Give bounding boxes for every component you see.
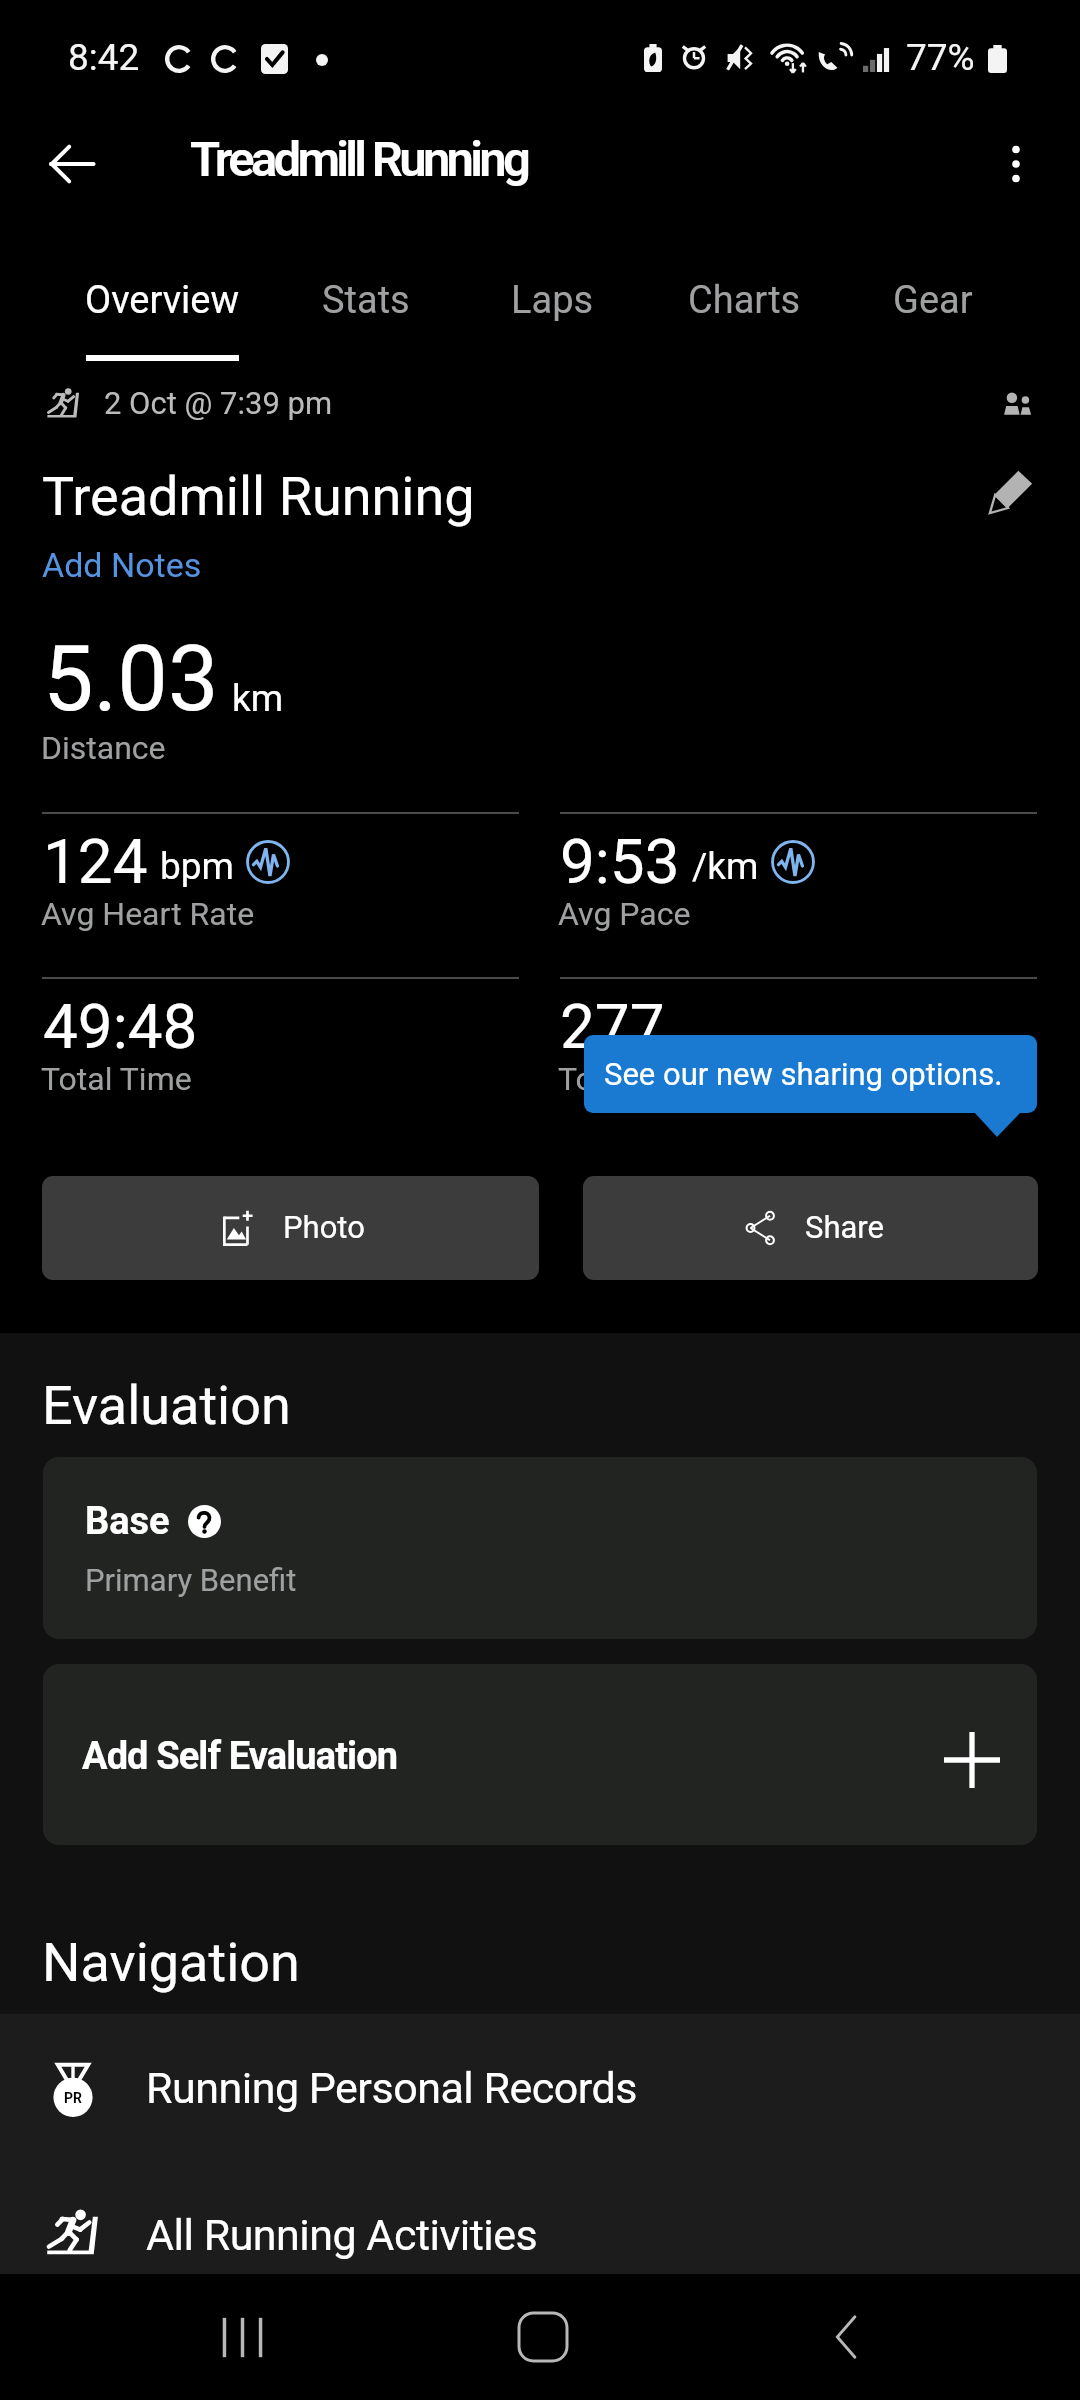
staticText: Laps <box>511 278 594 323</box>
staticText: Running Personal Records <box>146 2063 637 2113</box>
staticText: Stats <box>322 278 410 323</box>
staticText: Photo <box>283 1209 365 1245</box>
button[interactable]: Base <box>43 1457 1037 1639</box>
staticText: 9:53 <box>560 825 680 898</box>
button[interactable]: Laps <box>457 234 647 364</box>
staticText: Avg Heart Rate <box>41 895 255 933</box>
staticText: 5.03 <box>43 627 219 732</box>
button[interactable]: Stats <box>276 234 456 364</box>
button[interactable]: PR <box>0 2014 1080 2162</box>
staticText: Share <box>805 1209 884 1245</box>
button[interactable]: Home <box>463 2274 623 2400</box>
staticText: km <box>232 677 284 720</box>
staticText: Primary Benefit <box>85 1562 297 1598</box>
staticText: 2 Oct @ 7:39 pm <box>104 385 333 421</box>
button[interactable]: All Running Activities <box>0 2162 1080 2274</box>
staticText: Navigation <box>42 1931 300 1994</box>
staticText: Treadmill Running <box>42 465 475 528</box>
button[interactable]: Recent apps <box>162 2274 322 2400</box>
staticText: Evaluation <box>42 1374 291 1437</box>
button[interactable]: See our new sharing options. <box>584 1035 1037 1113</box>
staticText: Total Time <box>41 1060 192 1098</box>
button[interactable]: Overview <box>45 234 280 364</box>
staticText: Overview <box>85 278 240 323</box>
staticText: bpm <box>160 845 234 888</box>
staticText: All Running Activities <box>146 2210 538 2260</box>
staticText: Treadmill Running <box>190 131 528 188</box>
staticText: 124 <box>43 825 148 898</box>
staticText: Gear <box>893 278 973 323</box>
button[interactable]: Edit <box>975 455 1047 527</box>
staticText: Avg Pace <box>558 895 691 933</box>
staticText: 8:42 <box>68 36 140 79</box>
staticText: See our new sharing options. <box>604 1056 1003 1092</box>
button[interactable]: Share <box>583 1176 1038 1280</box>
staticText: 77% <box>906 36 975 79</box>
staticText: Base <box>85 1499 170 1544</box>
button[interactable]: Participants <box>987 373 1047 433</box>
staticText: Add Self Evaluation <box>82 1734 398 1779</box>
button[interactable]: Add Notes <box>40 545 204 585</box>
staticText: Charts <box>688 278 801 323</box>
button[interactable]: Back <box>26 118 118 210</box>
button[interactable]: Add Self Evaluation <box>43 1664 1037 1845</box>
staticText: Total Calories <box>558 1060 754 1098</box>
button[interactable]: Back <box>767 2274 927 2400</box>
button[interactable]: Photo <box>42 1176 539 1280</box>
button[interactable]: Charts <box>647 234 842 364</box>
staticText: 277 <box>560 990 665 1063</box>
staticText: PR <box>64 2090 82 2106</box>
staticText: Add Notes <box>42 545 202 585</box>
staticText: 49:48 <box>43 990 198 1063</box>
button[interactable]: Gear <box>838 234 1028 364</box>
button[interactable]: More options <box>972 120 1060 208</box>
staticText: Distance <box>41 729 166 767</box>
staticText: /km <box>692 845 759 888</box>
